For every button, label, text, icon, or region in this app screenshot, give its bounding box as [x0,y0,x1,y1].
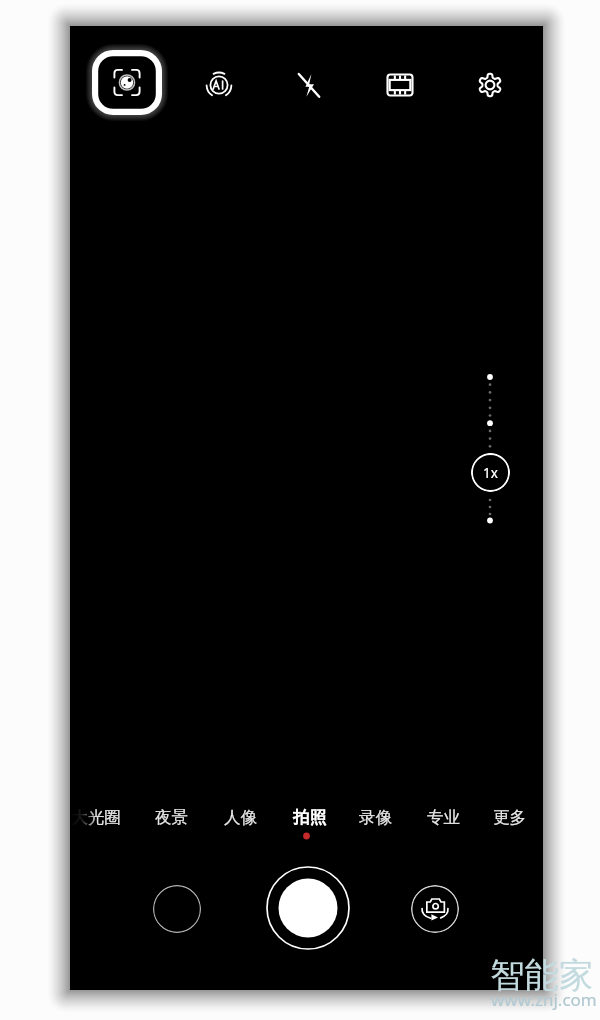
button[interactable]: Settings [468,63,512,107]
staticText: 更多 [493,807,526,828]
button[interactable]: 专业 [425,805,461,829]
button[interactable]: Filters [378,63,422,107]
button[interactable]: AI mode [197,63,241,107]
button[interactable]: Flash off [287,63,331,107]
staticText: 录像 [359,807,392,828]
button[interactable]: 夜景 [153,805,189,829]
button[interactable]: 录像 [357,805,393,829]
button[interactable]: 大光圈 [70,805,123,829]
button[interactable]: 人像 [222,805,258,829]
button[interactable]: AI vision [92,50,162,115]
staticText: 1x [483,464,498,482]
staticText: 夜景 [155,807,188,828]
staticText: 人像 [224,807,257,828]
button[interactable]: 拍照 [291,805,327,829]
staticText: 拍照 [293,807,326,828]
button[interactable]: Switch camera [411,885,459,933]
button[interactable]: Gallery [153,885,201,933]
button[interactable]: 更多 [491,805,527,829]
staticText: 专业 [427,807,460,828]
staticText: 智能家 [490,954,594,997]
button[interactable]: Shutter [264,864,352,952]
staticText: 大光圈 [71,807,121,828]
button[interactable]: 1x [471,453,510,492]
staticText: www.znj.com [491,988,597,1011]
